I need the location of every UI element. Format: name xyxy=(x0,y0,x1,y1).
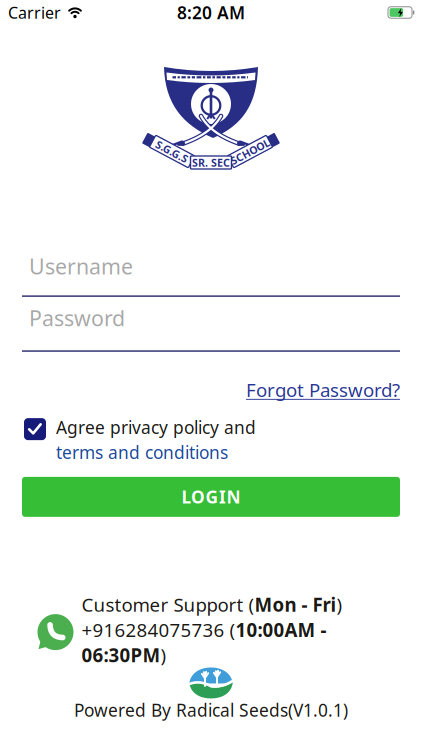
button[interactable]: Password xyxy=(22,304,125,332)
button[interactable] xyxy=(24,418,46,440)
staticText: SR. SEC xyxy=(192,155,230,170)
staticText: +916284075736 (10:00AM - xyxy=(81,617,326,642)
staticText: terms and conditions xyxy=(56,441,228,464)
button[interactable]: Powered By Radical Seeds(V1.0.1) xyxy=(74,698,348,721)
staticText: Password xyxy=(29,304,125,332)
staticText: 8:20 AM xyxy=(177,1,245,24)
staticText: Customer Support (Mon - Fri) xyxy=(81,592,342,617)
button[interactable]: Username xyxy=(22,252,133,280)
staticText: Forgot Password? xyxy=(246,377,400,402)
staticText: Username xyxy=(29,252,133,280)
button[interactable]: Forgot Password? xyxy=(246,377,400,402)
staticText: SCHOOL xyxy=(228,144,271,159)
staticText: Agree privacy policy and xyxy=(56,416,256,439)
staticText: Powered By Radical Seeds(V1.0.1) xyxy=(74,698,348,721)
button[interactable]: LOGIN xyxy=(22,477,400,517)
staticText: LOGIN xyxy=(181,485,240,508)
button[interactable]: terms and conditions xyxy=(56,441,228,464)
staticText: 06:30PM) xyxy=(81,643,166,667)
staticText: S.G.G.S xyxy=(154,144,189,159)
staticText: Carrier xyxy=(8,2,61,23)
button[interactable]: Customer Support (Mon - Fri) xyxy=(0,592,422,667)
